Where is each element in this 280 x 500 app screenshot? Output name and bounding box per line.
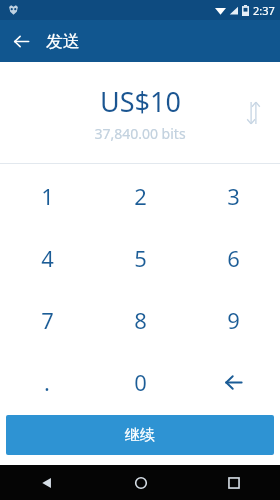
button[interactable]: 2	[94, 164, 187, 227]
staticText: .	[44, 367, 50, 397]
staticText: 继续	[125, 426, 155, 445]
staticText: 8	[134, 305, 147, 335]
button[interactable]: Home	[94, 465, 187, 500]
button[interactable]: 1	[0, 164, 94, 227]
button[interactable]: Swap currency	[234, 94, 272, 132]
button[interactable]: 0	[94, 351, 187, 413]
staticText: 0	[134, 367, 147, 397]
staticText: 3	[227, 181, 240, 211]
staticText: 发送	[46, 31, 80, 52]
staticText: 2:37	[253, 3, 275, 18]
button[interactable]: 5	[94, 227, 187, 289]
staticText: 5	[134, 243, 147, 273]
button[interactable]: Back	[0, 20, 42, 62]
button[interactable]: Back	[0, 465, 94, 500]
staticText: 2	[134, 181, 147, 211]
staticText: 9	[227, 305, 240, 335]
button[interactable]: 4	[0, 227, 94, 289]
staticText: 37,840.00 bits	[94, 124, 186, 143]
button[interactable]: 3	[187, 164, 280, 227]
staticText: 7	[41, 305, 54, 335]
staticText: 6	[227, 243, 240, 273]
button[interactable]: 继续	[6, 415, 274, 455]
button[interactable]: 7	[0, 289, 94, 351]
button[interactable]: 9	[187, 289, 280, 351]
staticText: US$10	[100, 83, 181, 120]
staticText: 1	[41, 181, 54, 211]
staticText: 4	[41, 243, 54, 273]
button[interactable]: Recent apps	[187, 465, 280, 500]
button[interactable]: 8	[94, 289, 187, 351]
button[interactable]: 6	[187, 227, 280, 289]
button[interactable]: .	[0, 351, 94, 413]
button[interactable]: Backspace	[187, 351, 280, 413]
